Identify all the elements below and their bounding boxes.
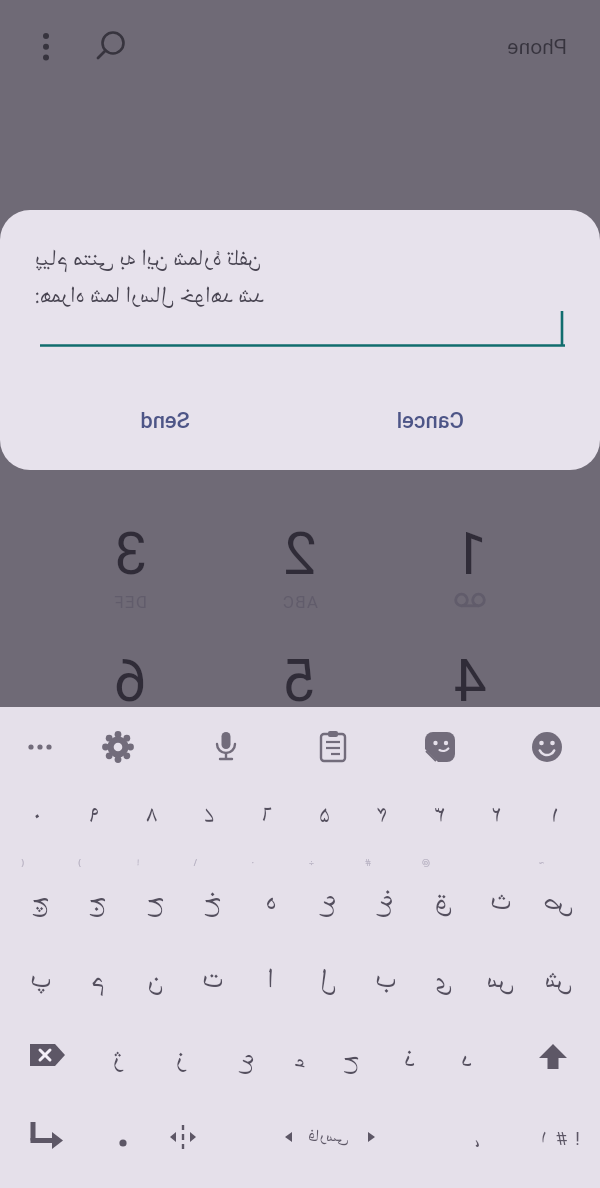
staticText: ژ: [112, 1042, 123, 1077]
button[interactable]: [23, 1113, 71, 1161]
staticText: 5: [283, 646, 317, 706]
staticText: ۱: [540, 1125, 547, 1151]
button[interactable]: 6: [90, 646, 170, 706]
button[interactable]: ۰: [9, 787, 65, 843]
staticText: DEF: [113, 592, 147, 612]
button[interactable]: س: [473, 947, 529, 1013]
button[interactable]: ع: [301, 869, 357, 935]
button[interactable]: خ: [185, 869, 241, 935]
button[interactable]: ح: [325, 1026, 379, 1092]
staticText: ،: [474, 1121, 480, 1156]
staticText: Cancel: [396, 408, 464, 434]
button[interactable]: [313, 727, 353, 767]
button[interactable]: [529, 1034, 577, 1082]
button[interactable]: Cancel: [375, 397, 485, 445]
button[interactable]: ص: [531, 869, 587, 935]
staticText: س: [486, 961, 515, 999]
button[interactable]: [527, 727, 567, 767]
staticText: ۱: [551, 799, 559, 832]
button[interactable]: [206, 727, 246, 767]
staticText: پیام متنی به این شمارهٔ تلفن همراه شما ا…: [35, 243, 265, 312]
staticText: ۷: [203, 799, 214, 832]
button[interactable]: ب: [358, 947, 414, 1013]
staticText: ی: [435, 961, 453, 999]
button[interactable]: ۳: [412, 787, 468, 843]
staticText: ۶: [261, 799, 272, 832]
button[interactable]: ی: [416, 947, 472, 1013]
button[interactable]: ه: [243, 869, 299, 935]
staticText: Send: [140, 408, 190, 434]
button[interactable]: د: [440, 1026, 494, 1092]
button[interactable]: 3: [90, 519, 170, 579]
button[interactable]: [163, 1117, 203, 1157]
button[interactable]: ۲: [469, 787, 525, 843]
button[interactable]: ۹: [66, 787, 122, 843]
button[interactable]: غ: [358, 869, 414, 935]
button[interactable]: [23, 1031, 71, 1079]
button[interactable]: ت: [185, 947, 241, 1013]
staticText: ح: [147, 883, 165, 921]
button[interactable]: 2: [260, 519, 340, 579]
button[interactable]: ج: [70, 869, 126, 935]
staticText: ۰: [33, 799, 41, 832]
staticText: ): [78, 856, 81, 868]
button[interactable]: ل: [301, 947, 357, 1013]
button[interactable]: ق: [416, 869, 472, 935]
button[interactable]: پ: [13, 947, 69, 1013]
staticText: 6: [113, 646, 147, 706]
staticText: پ: [30, 961, 52, 999]
button[interactable]: [20, 727, 60, 767]
button[interactable]: 4: [430, 646, 510, 706]
staticText: ش: [544, 961, 573, 999]
button[interactable]: ن: [128, 947, 184, 1013]
button[interactable]: چ: [13, 869, 69, 935]
staticText: ÷: [308, 856, 314, 868]
button[interactable]: ح: [128, 869, 184, 935]
button[interactable]: ۸: [124, 787, 180, 843]
button[interactable]: ۷: [181, 787, 237, 843]
staticText: غ: [377, 883, 394, 921]
staticText: ·: [251, 856, 254, 868]
button[interactable]: 1: [430, 519, 510, 579]
staticText: ب: [375, 961, 397, 999]
button[interactable]: [420, 727, 460, 767]
button[interactable]: [98, 727, 138, 767]
button[interactable]: ث: [473, 869, 529, 935]
button[interactable]: فارسی: [274, 1116, 384, 1156]
button[interactable]: !: [568, 1118, 588, 1158]
button[interactable]: ا: [243, 947, 299, 1013]
button[interactable]: ،: [462, 1118, 492, 1158]
staticText: ج: [89, 883, 107, 921]
staticText: Phone: [507, 35, 567, 60]
button[interactable]: ژ: [91, 1026, 145, 1092]
button[interactable]: ذ: [383, 1026, 437, 1092]
button[interactable]: ۴: [354, 787, 410, 843]
button[interactable]: [91, 25, 131, 65]
staticText: فارسی: [308, 1125, 349, 1148]
staticText: ۴: [376, 799, 388, 832]
button[interactable]: ۵: [297, 787, 353, 843]
button[interactable]: ز: [154, 1026, 208, 1092]
button[interactable]: ع: [220, 1026, 274, 1092]
staticText: #: [556, 1127, 568, 1149]
staticText: 2: [283, 519, 317, 579]
button[interactable]: 5: [260, 646, 340, 706]
staticText: #: [365, 856, 371, 868]
staticText: !: [575, 1127, 580, 1149]
staticText: چ: [32, 883, 50, 921]
button[interactable]: ۱: [527, 787, 583, 843]
staticText: ث: [490, 883, 512, 921]
staticText: (: [21, 856, 24, 868]
staticText: ح: [343, 1042, 360, 1077]
button[interactable]: Send: [110, 397, 220, 445]
staticText: 3: [113, 519, 147, 579]
button[interactable]: ش: [531, 947, 587, 1013]
button[interactable]: م: [70, 947, 126, 1013]
staticText: ل: [320, 961, 337, 999]
button[interactable]: ۶: [239, 787, 295, 843]
button[interactable]: ء: [273, 1026, 327, 1092]
button[interactable]: [26, 26, 66, 66]
button[interactable]: [107, 1127, 139, 1159]
staticText: ء: [294, 1042, 306, 1077]
staticText: !: [137, 856, 139, 868]
